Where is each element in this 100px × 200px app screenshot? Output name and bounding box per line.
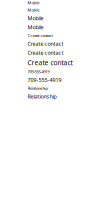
staticText: Create contact xyxy=(27,33,52,38)
staticText: 709-555-4919 xyxy=(27,76,61,83)
staticText: 709-555-4919 xyxy=(27,69,49,74)
staticText: Create contact xyxy=(27,49,63,56)
staticText: Mobile xyxy=(27,24,43,31)
staticText: Relationship xyxy=(27,85,47,91)
staticText: Mobile xyxy=(27,0,39,5)
staticText: Create contact xyxy=(27,58,72,67)
staticText: Relationship xyxy=(27,93,56,100)
staticText: Mobile xyxy=(27,7,39,13)
staticText: Mobile xyxy=(27,15,43,22)
staticText: Create contact xyxy=(27,40,63,47)
